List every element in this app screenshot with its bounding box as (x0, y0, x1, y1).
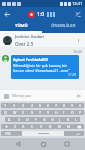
staticText: Q (4, 110, 7, 115)
staticText: forum sitesi ifimazbaas21 .com" (13, 68, 70, 73)
button[interactable]: Recents (61, 138, 73, 150)
button[interactable]: Jenkins Gudari (0, 33, 85, 47)
button[interactable]: U (52, 110, 60, 115)
staticText: ?123 (5, 132, 11, 136)
button[interactable]: B (46, 124, 55, 129)
button[interactable]: O (68, 110, 76, 115)
staticText: C (31, 124, 34, 129)
button[interactable]: K (64, 117, 72, 122)
staticText: Aykut Fırıldak400 (13, 57, 48, 62)
button[interactable]: E (19, 110, 28, 115)
button[interactable]: 9 (68, 103, 76, 108)
button[interactable]: 4 (28, 103, 36, 108)
staticText: 4 (31, 103, 34, 108)
staticText: 0 (79, 103, 82, 108)
button[interactable]: V (37, 124, 46, 129)
button[interactable]: D (23, 117, 32, 122)
staticText: 5 (39, 103, 42, 108)
button[interactable]: J (56, 117, 64, 122)
button[interactable]: Back (12, 138, 24, 150)
button[interactable]: Shift (1, 124, 11, 129)
button[interactable]: P (76, 110, 84, 115)
button[interactable]: , (14, 131, 22, 136)
staticText: H (51, 117, 54, 122)
button[interactable]: Back (0, 7, 14, 21)
button[interactable]: L (72, 117, 80, 122)
staticText: B (49, 124, 52, 129)
button[interactable]: Backspace (73, 124, 84, 129)
staticText: 9 (71, 103, 74, 108)
staticText: N (58, 124, 61, 129)
button[interactable]: A (5, 117, 14, 122)
button[interactable]: Home (37, 138, 49, 150)
button[interactable]: 3 (19, 103, 28, 108)
staticText: Y (47, 110, 50, 115)
staticText: , (18, 131, 19, 136)
button[interactable]: TÜMÜ (0, 21, 42, 31)
button[interactable]: Mesaj yaz (12, 93, 72, 99)
staticText: . (68, 131, 69, 136)
button[interactable]: Attach (2, 92, 10, 100)
button[interactable]: F (32, 117, 40, 122)
staticText: 7 (55, 103, 58, 108)
button[interactable]: 7 (52, 103, 60, 108)
button[interactable]: G (40, 117, 48, 122)
button[interactable]: 2 (10, 103, 19, 108)
staticText: 2 (13, 103, 16, 108)
staticText: A (8, 117, 11, 122)
button[interactable]: ?123 (1, 131, 14, 136)
button[interactable]: Z (11, 124, 19, 129)
button[interactable]: 1 (1, 103, 10, 108)
button[interactable]: S (14, 117, 23, 122)
staticText: 1 (4, 103, 7, 108)
staticText: R (31, 110, 34, 115)
staticText: Mesaj yaz (12, 93, 32, 99)
button[interactable]: Aykut Fırıldak400 (11, 55, 79, 79)
button[interactable]: Space (22, 131, 64, 136)
button[interactable]: . (64, 131, 72, 136)
staticText: ÖNEMLİLER (51, 23, 76, 29)
staticText: Z (14, 124, 17, 129)
staticText: X (22, 124, 25, 129)
staticText: S (18, 117, 20, 122)
staticText: M (67, 124, 71, 129)
staticText: L (75, 117, 77, 122)
button[interactable]: N (55, 124, 64, 129)
button[interactable]: Y (44, 110, 52, 115)
button[interactable]: ÖNEMLİLER (42, 21, 85, 31)
staticText: D (26, 117, 29, 122)
staticText: Over 2.5 (15, 41, 34, 47)
button[interactable]: W (10, 110, 19, 115)
button[interactable]: H (48, 117, 56, 122)
button[interactable]: I (60, 110, 68, 115)
staticText: Bilmediğiniz bir çok kazanç bir bahis (13, 63, 77, 68)
button[interactable]: 0 (76, 103, 84, 108)
staticText: F (35, 117, 37, 122)
staticText: O (71, 110, 74, 115)
button[interactable]: 6 (44, 103, 52, 108)
staticText: K (67, 117, 70, 122)
button[interactable]: M (64, 124, 73, 129)
staticText: Jenkins Gudari (15, 34, 45, 40)
button[interactable]: More options (71, 7, 85, 21)
button[interactable]: R (28, 110, 36, 115)
button[interactable]: Q (1, 110, 10, 115)
button[interactable]: Menu (74, 36, 82, 44)
button[interactable]: T (36, 110, 44, 115)
button[interactable]: Send (74, 91, 83, 100)
staticText: E (22, 110, 25, 115)
staticText: J (59, 117, 61, 122)
staticText: T (39, 110, 42, 115)
staticText: 16:43 (73, 49, 82, 54)
staticText: 3 (22, 103, 25, 108)
button[interactable]: Enter (72, 131, 84, 136)
button[interactable]: 5 (36, 103, 44, 108)
staticText: G (43, 117, 46, 122)
button[interactable]: X (19, 124, 28, 129)
staticText: 17:38 (68, 73, 77, 77)
button[interactable]: 8 (60, 103, 68, 108)
button[interactable]: C (28, 124, 37, 129)
staticText: V (40, 124, 43, 129)
staticText: TÜMÜ (15, 23, 28, 29)
staticText: U (55, 110, 58, 115)
